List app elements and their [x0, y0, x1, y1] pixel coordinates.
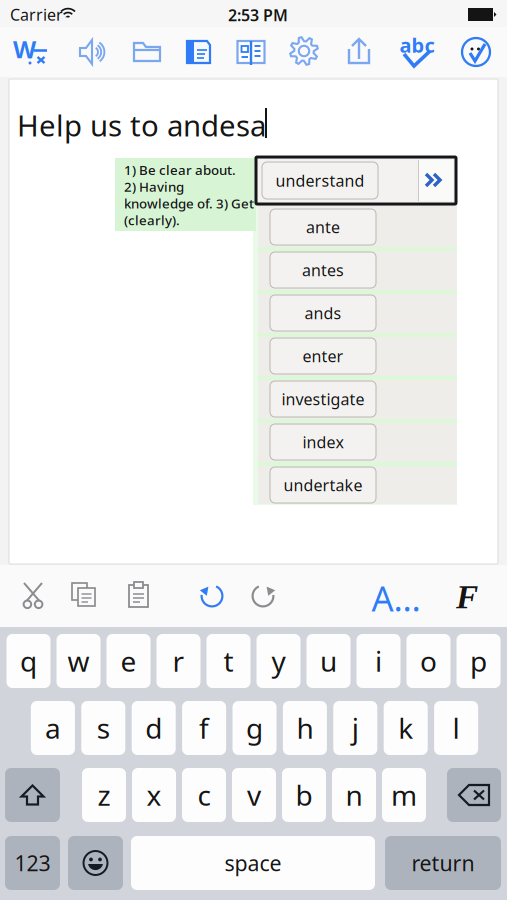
staticText: x [146, 776, 161, 814]
staticText: 1) Be clear about. [124, 161, 236, 179]
button[interactable]: Shift [5, 768, 60, 822]
button[interactable]: Document [183, 35, 215, 69]
button[interactable]: Undo [197, 579, 227, 611]
button[interactable]: b [282, 768, 326, 822]
button[interactable]: d [132, 701, 176, 755]
staticText: 2) Having [124, 178, 184, 195]
button[interactable]: q [6, 634, 50, 688]
staticText: o [420, 642, 437, 680]
staticText: u [320, 642, 337, 680]
staticText: antes [302, 259, 344, 281]
button[interactable]: z [82, 768, 126, 822]
button[interactable]: A... [368, 578, 424, 618]
button[interactable]: x [132, 768, 176, 822]
staticText: c [197, 776, 210, 814]
button[interactable]: return [385, 836, 501, 890]
staticText: y [271, 642, 285, 680]
staticText: m [391, 776, 417, 814]
button[interactable]: g [232, 701, 276, 755]
button[interactable]: y [256, 634, 300, 688]
staticText: z [97, 776, 110, 814]
button[interactable]: space [131, 836, 375, 890]
button[interactable]: j [333, 701, 377, 755]
staticText: g [246, 709, 263, 747]
staticText: space [224, 849, 281, 877]
button[interactable]: undertake [270, 467, 376, 503]
button[interactable]: o [406, 634, 450, 688]
staticText: d [145, 709, 162, 747]
staticText: i [375, 642, 382, 680]
staticText: t [223, 642, 233, 680]
button[interactable]: Files [131, 35, 163, 69]
button[interactable]: k [384, 701, 428, 755]
button[interactable]: Dictionary [234, 35, 267, 69]
staticText: w [67, 642, 89, 680]
staticText: l [453, 709, 460, 747]
button[interactable]: Settings [288, 35, 322, 69]
staticText: knowledge of. 3) Get [124, 194, 254, 212]
button[interactable]: a [31, 701, 75, 755]
staticText: 123 [14, 849, 50, 877]
button[interactable]: Proofread [459, 35, 493, 69]
button[interactable]: F [450, 580, 484, 614]
button[interactable]: investigate [270, 381, 376, 417]
button[interactable]: Redo [248, 579, 278, 611]
staticText: j [352, 709, 359, 747]
button[interactable]: More suggestions [419, 160, 453, 201]
button[interactable]: antes [270, 252, 376, 288]
button[interactable]: ands [270, 295, 376, 331]
staticText: a [45, 709, 61, 747]
staticText: n [345, 776, 362, 814]
staticText: 2:53 PM [228, 4, 288, 26]
staticText: ante [306, 216, 340, 238]
button[interactable]: l [434, 701, 478, 755]
staticText: return [411, 849, 474, 877]
button[interactable]: enter [270, 338, 376, 374]
button[interactable]: c [182, 768, 226, 822]
button[interactable]: 123 [5, 836, 60, 890]
staticText: q [20, 642, 37, 680]
staticText: understand [275, 170, 364, 191]
button[interactable]: n [332, 768, 376, 822]
staticText: r [172, 642, 184, 680]
button[interactable]: u [306, 634, 350, 688]
button[interactable]: Paste [126, 580, 152, 610]
button[interactable]: Cut [21, 580, 47, 610]
staticText: e [120, 642, 136, 680]
button[interactable]: understand [262, 162, 378, 199]
button[interactable]: Spell check [399, 35, 435, 69]
button[interactable]: Share [343, 35, 375, 69]
button[interactable]: p [456, 634, 500, 688]
button[interactable]: Word count [14, 36, 48, 68]
button[interactable]: Speak [77, 36, 109, 68]
staticText: k [398, 709, 413, 747]
staticText: b [295, 776, 312, 814]
button[interactable]: t [206, 634, 250, 688]
staticText: undertake [283, 474, 362, 496]
staticText: index [302, 431, 343, 453]
button[interactable]: index [270, 424, 376, 460]
staticText: s [97, 709, 110, 747]
staticText: W [13, 33, 36, 65]
button[interactable]: h [283, 701, 327, 755]
button[interactable]: Delete [447, 768, 501, 822]
button[interactable]: v [232, 768, 276, 822]
button[interactable]: Copy [70, 579, 98, 611]
button[interactable]: r [156, 634, 200, 688]
button[interactable]: Emoji [68, 836, 123, 890]
staticText: h [296, 709, 313, 747]
button[interactable]: f [182, 701, 226, 755]
staticText: abc [399, 32, 434, 58]
button[interactable]: m [382, 768, 426, 822]
staticText: p [470, 642, 487, 680]
staticText: v [247, 776, 261, 814]
button[interactable]: w [56, 634, 100, 688]
staticText: (clearly). [124, 211, 180, 229]
staticText: ands [304, 302, 341, 324]
button[interactable]: s [81, 701, 125, 755]
button[interactable]: e [106, 634, 150, 688]
staticText: investigate [281, 388, 364, 410]
button[interactable]: i [356, 634, 400, 688]
button[interactable]: ante [270, 209, 376, 245]
staticText: F [456, 578, 478, 615]
